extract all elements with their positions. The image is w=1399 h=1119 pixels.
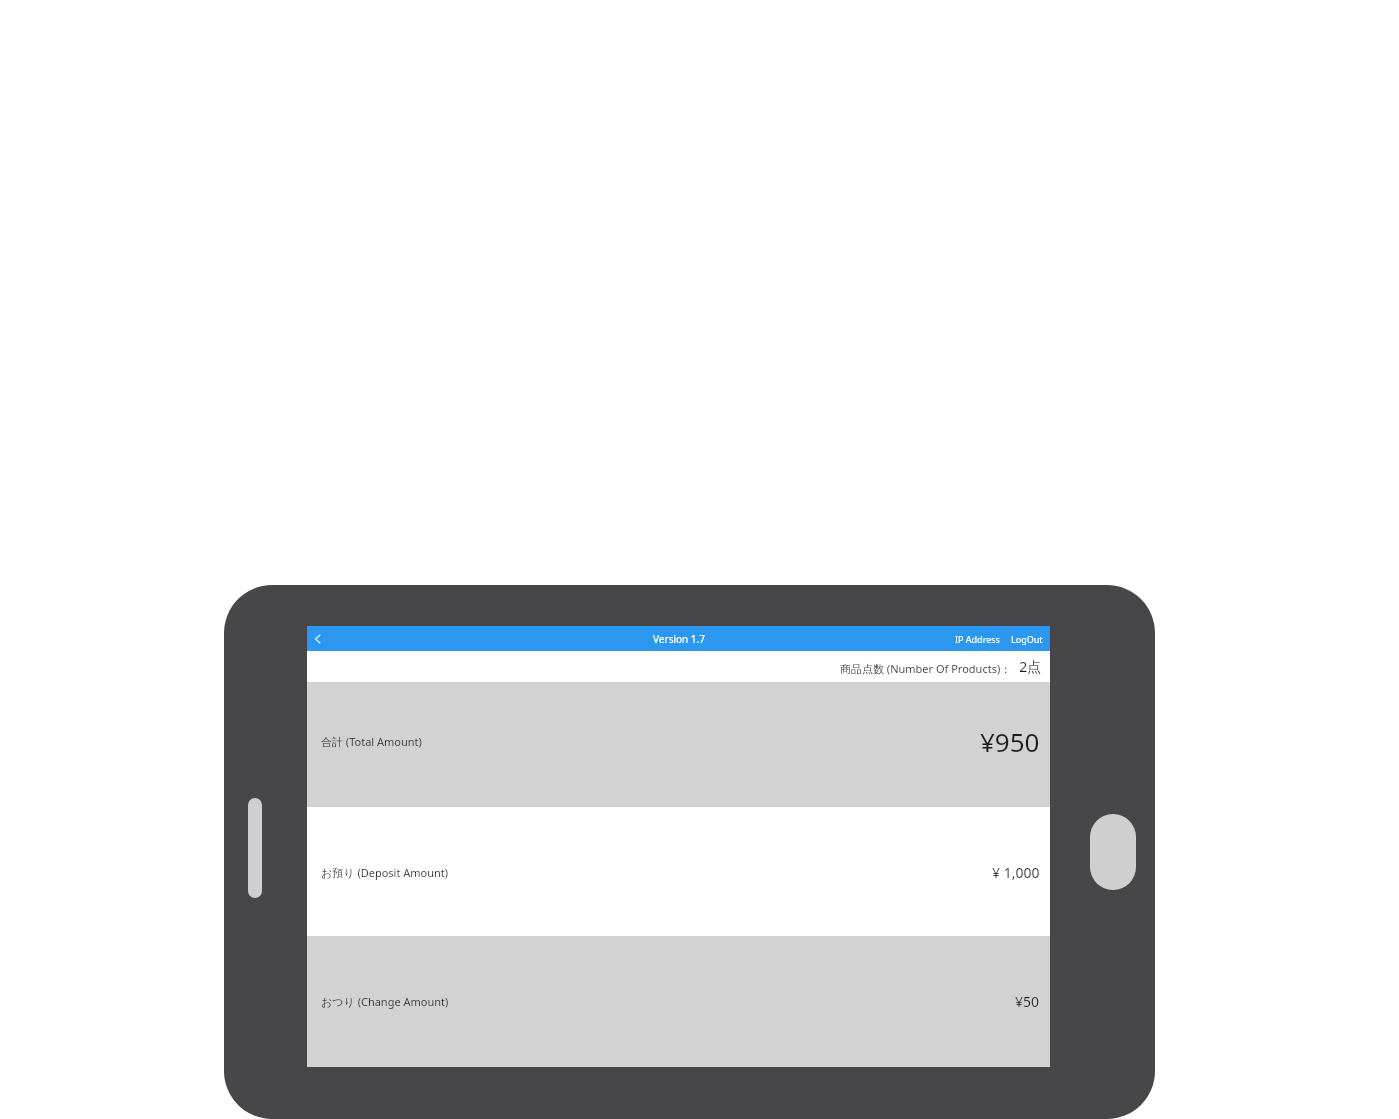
button[interactable]: 合計 (Total Amount) <box>307 682 1050 807</box>
button[interactable]: IP Address <box>954 630 1001 648</box>
staticText: Version 1.7 <box>653 632 705 646</box>
button[interactable]: Back <box>307 626 329 651</box>
button[interactable]: お預り (Deposit Amount) <box>307 807 1050 936</box>
staticText: お預り (Deposit Amount) <box>321 865 449 880</box>
staticText: IP Address <box>955 633 1000 645</box>
staticText: ¥950 <box>980 724 1040 759</box>
button[interactable]: LogOut <box>1010 630 1044 648</box>
staticText: 合計 (Total Amount) <box>321 734 422 749</box>
button[interactable]: おつり (Change Amount) <box>307 936 1050 1067</box>
staticText: ¥50 <box>1015 992 1040 1011</box>
staticText: ¥ 1,000 <box>992 863 1040 882</box>
staticText: おつり (Change Amount) <box>321 994 449 1009</box>
staticText: 商品点数 (Number Of Products)： <box>840 661 1012 676</box>
staticText: LogOut <box>1011 633 1043 645</box>
staticText: 2点 <box>1012 657 1042 676</box>
